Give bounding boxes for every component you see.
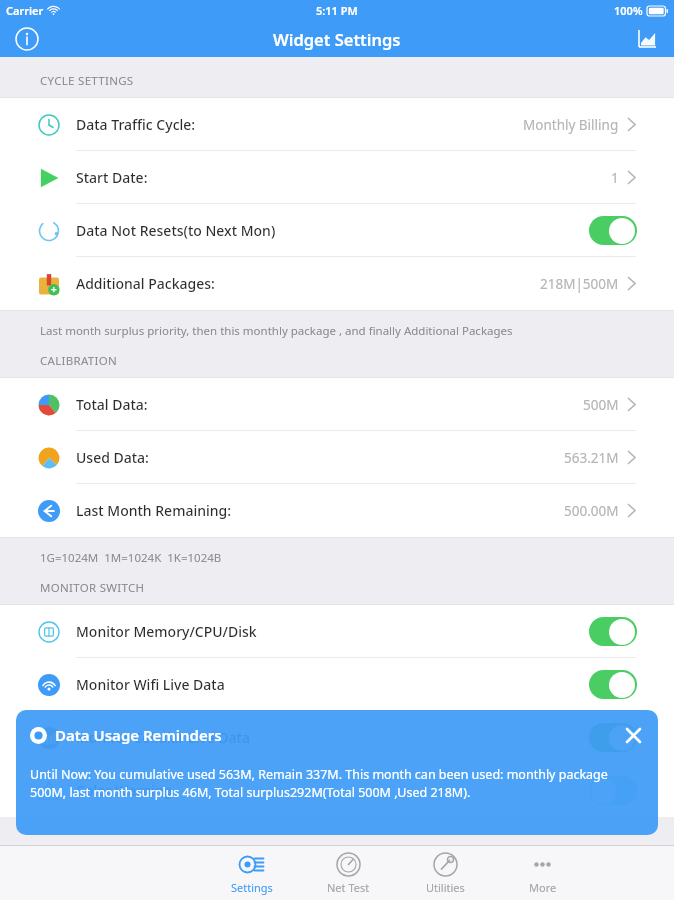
staticText: 218M|500M [540,275,619,293]
button[interactable]: Monitor Wifi Live Data [0,658,674,711]
staticText: Net Test [327,880,370,895]
button[interactable]: Last Month Remaining: [0,484,674,537]
button[interactable]: Data Not Resets(to Next Mon) [0,204,674,257]
staticText: MONITOR SWITCH [40,580,145,596]
button[interactable]: Toggle [589,723,637,752]
button[interactable]: Utilities [397,846,494,900]
button[interactable]: Close [620,722,646,748]
button[interactable]: Monitor Cellular Live Data [0,711,674,764]
button[interactable]: Statistics [634,26,660,52]
staticText: Data Not Resets(to Next Mon) [76,221,276,240]
staticText: Monitor Memory/CPU/Disk [76,622,257,641]
button[interactable]: Net Test [300,846,397,900]
staticText: Start Date: [76,168,148,187]
staticText: Used Data: [76,448,149,467]
staticText: Monitor Wifi Live Data [76,675,225,694]
staticText: Data Traffic Cycle: [76,115,196,134]
staticText: Until Now: You cumulative used 563M, Rem… [30,766,644,801]
staticText: Monthly Billing [523,116,619,134]
staticText: Utilities [426,880,465,895]
staticText: 500M [583,396,619,414]
staticText: Total Data: [76,395,148,414]
button[interactable]: Additional Packages: [0,257,674,310]
button[interactable]: Info [12,24,42,54]
staticText: Last Month Remaining: [76,501,232,520]
staticText: 5:11 PM [316,3,358,18]
staticText: 563.21M [564,449,619,467]
button[interactable]: Toggle [589,617,637,646]
staticText: Widget Settings [273,28,401,50]
staticText: 500.00M [564,502,619,520]
staticText: Monitor Cellular Live Data [76,728,250,747]
staticText: Color Warning [76,781,173,800]
staticText: CALIBRATION [40,353,118,369]
staticText: Additional Packages: [76,274,215,293]
staticText: 1 [611,169,619,187]
button[interactable]: Settings [203,846,300,900]
staticText: Last month surplus priority, then this m… [40,323,513,339]
button[interactable]: Data Traffic Cycle: [0,98,674,151]
button[interactable]: Data Usage Reminders [16,710,658,835]
staticText: More [529,880,557,895]
staticText: CYCLE SETTINGS [40,73,134,89]
button[interactable]: Toggle [589,776,637,805]
staticText: 1G=1024M 1M=1024K 1K=1024B [40,550,222,566]
staticText: Settings [231,880,273,895]
button[interactable]: Start Date: [0,151,674,204]
staticText: Data Usage Reminders [55,725,222,745]
button[interactable]: Total Data: [0,378,674,431]
staticText: Carrier [6,3,44,18]
button[interactable]: Used Data: [0,431,674,484]
button[interactable]: Monitor Memory/CPU/Disk [0,605,674,658]
button[interactable]: Color Warning [0,764,674,817]
button[interactable]: Toggle [589,670,637,699]
staticText: 100% [614,3,643,18]
button[interactable]: More [494,846,591,900]
button[interactable]: Toggle [589,216,637,245]
